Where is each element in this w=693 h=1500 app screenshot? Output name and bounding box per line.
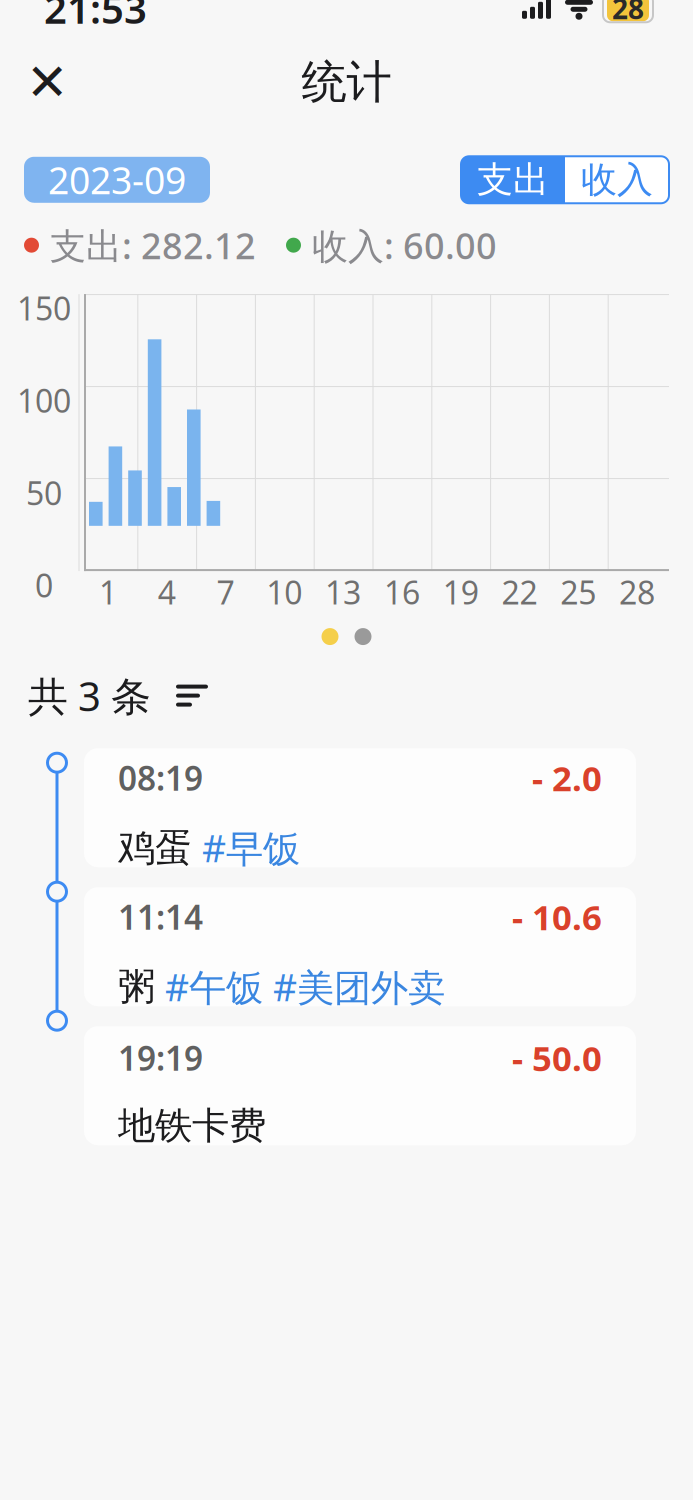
staticText: 支出: 282.12 bbox=[39, 221, 256, 269]
staticText: 19 bbox=[443, 571, 479, 613]
staticText: 13 bbox=[325, 571, 361, 613]
button[interactable]: Close bbox=[16, 51, 78, 113]
staticText: 2023-09 bbox=[48, 155, 186, 205]
staticText: 共 3 条 bbox=[28, 669, 151, 722]
staticText: 收入 bbox=[581, 158, 653, 202]
button[interactable]: 19:19 bbox=[84, 1026, 636, 1145]
staticText: 28 bbox=[619, 571, 655, 613]
staticText: 22 bbox=[501, 571, 537, 613]
staticText: 150 bbox=[17, 287, 71, 329]
button[interactable]: Sort bbox=[151, 675, 219, 717]
staticText: 7 bbox=[216, 571, 234, 613]
staticText: 统计 bbox=[301, 54, 391, 110]
staticText: 粥 bbox=[118, 964, 155, 1010]
staticText: - 10.6 bbox=[512, 894, 602, 940]
staticText: #午饭 bbox=[155, 962, 263, 1011]
staticText: 0 bbox=[35, 564, 53, 606]
staticText: 100 bbox=[17, 379, 71, 422]
staticText: 16 bbox=[384, 571, 420, 613]
button[interactable]: 收入 bbox=[565, 156, 669, 203]
staticText: 10 bbox=[266, 571, 302, 613]
button[interactable]: 08:19 bbox=[84, 748, 636, 867]
staticText: 19:19 bbox=[118, 1036, 203, 1080]
staticText: 1 bbox=[99, 571, 117, 613]
staticText: 08:19 bbox=[118, 756, 203, 800]
staticText: 28 bbox=[612, 0, 644, 27]
staticText: 11:14 bbox=[118, 895, 203, 939]
staticText: #美团外卖 bbox=[263, 962, 445, 1011]
staticText: 收入: 60.00 bbox=[301, 221, 497, 269]
staticText: 4 bbox=[158, 571, 176, 613]
staticText: - 50.0 bbox=[512, 1035, 602, 1081]
button[interactable]: 2023-09 bbox=[24, 157, 210, 203]
staticText: 25 bbox=[560, 571, 596, 613]
button[interactable]: 11:14 bbox=[84, 887, 636, 1006]
staticText: 地铁卡费 bbox=[118, 1103, 266, 1149]
staticText: #早饭 bbox=[192, 823, 300, 872]
button[interactable]: 支出 bbox=[461, 156, 565, 203]
staticText: ✕ bbox=[26, 53, 68, 111]
staticText: 21:53 bbox=[44, 0, 147, 35]
staticText: 50 bbox=[26, 471, 62, 514]
staticText: 鸡蛋 bbox=[118, 825, 192, 871]
staticText: - 2.0 bbox=[532, 755, 602, 801]
staticText: 支出 bbox=[477, 158, 549, 202]
